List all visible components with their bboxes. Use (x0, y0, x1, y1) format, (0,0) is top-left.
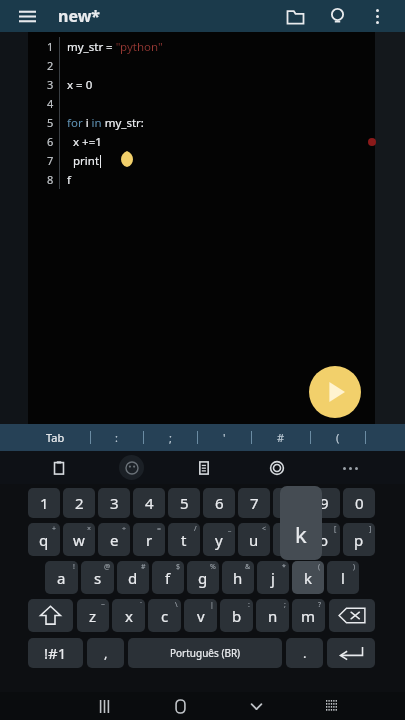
staticText: p (354, 530, 364, 550)
button[interactable]: 9 (308, 488, 340, 518)
button[interactable]: Shift (28, 599, 73, 632)
button[interactable]: More options (363, 2, 391, 30)
button[interactable]: p (343, 523, 375, 556)
button[interactable]: d (117, 561, 149, 594)
button[interactable]: g (187, 561, 219, 594)
button[interactable]: v (184, 599, 217, 632)
button[interactable]: 2 (63, 488, 95, 518)
button[interactable]: Tab (42, 430, 69, 445)
staticText: d (128, 568, 138, 588)
staticText: ( (318, 562, 321, 572)
staticText: g (198, 568, 208, 588)
button[interactable]: i (273, 523, 305, 556)
staticText: % (210, 562, 216, 572)
button[interactable]: ( (333, 430, 343, 445)
button[interactable]: e (98, 523, 130, 556)
staticText: y (215, 530, 223, 550)
button[interactable]: Backspace (329, 599, 375, 632)
button[interactable]: u (238, 523, 270, 556)
button[interactable]: Run (309, 366, 361, 418)
button[interactable]: . (286, 638, 323, 668)
staticText: > (297, 524, 302, 534)
button[interactable]: s (81, 561, 114, 594)
button[interactable]: Menu (14, 3, 40, 29)
button[interactable]: h (222, 561, 254, 594)
staticText: ~ (101, 600, 106, 610)
staticText: z (89, 606, 97, 626)
button[interactable]: 3 (98, 488, 130, 518)
button[interactable]: j (257, 561, 289, 594)
staticText: b (232, 606, 242, 626)
button[interactable]: 1 (28, 488, 60, 518)
button[interactable]: o (308, 523, 340, 556)
staticText: f (67, 172, 71, 188)
button[interactable]: w (63, 523, 95, 556)
staticText: # (141, 562, 146, 572)
button[interactable]: Clipboard (46, 455, 72, 481)
staticText: < (262, 524, 267, 534)
staticText: 3 (110, 493, 119, 513)
staticText: s (94, 568, 102, 588)
button[interactable]: Enter (327, 638, 375, 668)
button[interactable]: # (274, 430, 288, 445)
staticText: ! (73, 562, 75, 572)
staticText: ( (336, 430, 340, 445)
staticText: \ (175, 600, 178, 610)
staticText: 2 (75, 493, 84, 513)
button[interactable]: k (292, 561, 324, 594)
button[interactable]: n (256, 599, 289, 632)
staticText: h (233, 568, 243, 588)
button[interactable]: Open folder (281, 2, 309, 30)
staticText: 4 (145, 493, 154, 513)
staticText: ` (140, 600, 142, 610)
button[interactable]: 5 (168, 488, 200, 518)
button[interactable]: Home (168, 694, 192, 718)
button[interactable]: , (87, 638, 124, 668)
button[interactable]: : (112, 430, 121, 445)
staticText: 4 (47, 96, 54, 111)
button[interactable]: m (292, 599, 325, 632)
staticText: j (271, 568, 275, 588)
staticText: print (67, 153, 100, 169)
button[interactable]: Keyboard layout (320, 694, 344, 718)
button[interactable]: ' (220, 430, 229, 445)
button[interactable]: Emoji (119, 455, 144, 480)
button[interactable]: Settings (264, 455, 290, 481)
button[interactable]: t (168, 523, 200, 556)
staticText: x = 0 (67, 77, 93, 93)
button[interactable]: Português (BR) (128, 638, 282, 668)
button[interactable]: l (327, 561, 359, 594)
button[interactable]: ; (166, 430, 175, 445)
button[interactable]: More (337, 455, 363, 481)
staticText: ] (369, 524, 372, 534)
staticText: | (210, 600, 214, 610)
button[interactable]: Recents (92, 694, 116, 718)
button[interactable]: y (203, 523, 235, 556)
button[interactable]: Notes (191, 455, 217, 481)
button[interactable]: f (152, 561, 184, 594)
button[interactable]: 7 (238, 488, 270, 518)
button[interactable]: c (148, 599, 181, 632)
button[interactable]: !#1 (28, 638, 83, 668)
button[interactable]: Hints (323, 2, 351, 30)
button[interactable]: 6 (203, 488, 235, 518)
button[interactable]: q (28, 523, 60, 556)
button[interactable]: b (220, 599, 253, 632)
button[interactable]: 0 (343, 488, 375, 518)
staticText: 7 (47, 153, 54, 168)
staticText: o (319, 530, 329, 550)
button[interactable]: 8 (273, 488, 305, 518)
staticText: + (52, 524, 57, 534)
button[interactable]: x (112, 599, 145, 632)
button[interactable]: z (77, 599, 109, 632)
button[interactable]: Hide keyboard (244, 694, 268, 718)
button[interactable]: 4 (133, 488, 165, 518)
button[interactable]: r (133, 523, 165, 556)
staticText: 1 (40, 493, 49, 513)
staticText: / (194, 524, 197, 534)
staticText: $ (176, 562, 181, 572)
button[interactable]: a (45, 561, 78, 594)
staticText: ? (318, 600, 322, 610)
staticText: !#1 (44, 643, 67, 663)
